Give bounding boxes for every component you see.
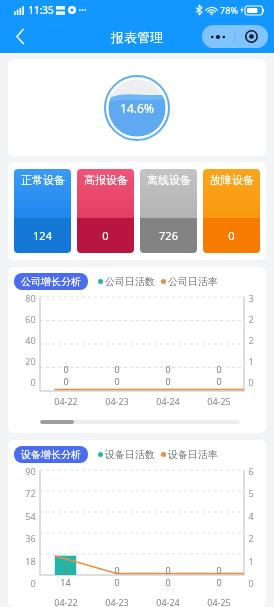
staticText: 设备增长分析 bbox=[21, 448, 81, 461]
staticText: 04-23 bbox=[105, 596, 129, 607]
staticText: 0 bbox=[165, 564, 171, 576]
staticText: 0 bbox=[30, 376, 36, 388]
staticText: 0 bbox=[102, 228, 109, 243]
staticText: 72 bbox=[25, 487, 36, 499]
staticText: 0 bbox=[30, 577, 36, 589]
staticText: 18 bbox=[25, 555, 36, 567]
button[interactable]: 公司增长分析 bbox=[8, 267, 266, 433]
staticText: 公司增长分析 bbox=[21, 275, 81, 288]
staticText: 36 bbox=[25, 532, 36, 544]
button[interactable]: Back bbox=[0, 20, 40, 53]
staticText: 0 bbox=[63, 363, 69, 375]
staticText: 正常设备 bbox=[21, 173, 65, 187]
staticText: 0 bbox=[216, 576, 222, 588]
staticText: 0 bbox=[228, 228, 235, 243]
button[interactable]: 正常设备 bbox=[14, 169, 71, 253]
staticText: 14 bbox=[60, 576, 71, 588]
staticText: 设备日活率 bbox=[168, 448, 218, 461]
staticText: 04-24 bbox=[156, 596, 180, 607]
button[interactable]: 离线设备 bbox=[140, 169, 197, 253]
staticText: 14.6% bbox=[120, 100, 154, 116]
staticText: 40 bbox=[25, 334, 36, 346]
staticText: 6 bbox=[248, 465, 254, 477]
staticText: 90 bbox=[25, 465, 36, 477]
staticText: 离线设备 bbox=[147, 173, 191, 187]
button[interactable]: 设备增长分析 bbox=[8, 440, 266, 607]
staticText: 3 bbox=[248, 292, 254, 304]
staticText: 0 bbox=[165, 363, 171, 375]
staticText: 公司日活数 bbox=[105, 275, 155, 288]
staticText: 报表管理 bbox=[111, 29, 163, 45]
staticText: 78% bbox=[220, 4, 238, 16]
staticText: 0 bbox=[216, 375, 222, 387]
staticText: 0 bbox=[216, 564, 222, 576]
button[interactable]: Mini program menu bbox=[202, 25, 268, 48]
staticText: 0 bbox=[63, 375, 69, 387]
staticText: 2 bbox=[248, 313, 254, 325]
staticText: 04-25 bbox=[207, 395, 231, 407]
staticText: 04-22 bbox=[54, 596, 78, 607]
staticText: 2 bbox=[248, 334, 254, 346]
staticText: 设备日活数 bbox=[105, 448, 155, 461]
staticText: 0 bbox=[114, 363, 120, 375]
button[interactable]: 高报设备 bbox=[77, 169, 134, 253]
staticText: 5 bbox=[248, 487, 254, 499]
staticText: 0 bbox=[114, 375, 120, 387]
staticText: 54 bbox=[25, 510, 36, 522]
staticText: 04-24 bbox=[156, 395, 180, 407]
staticText: 1 bbox=[248, 555, 254, 567]
staticText: 04-23 bbox=[105, 395, 129, 407]
staticText: 0 bbox=[114, 564, 120, 576]
staticText: 0 bbox=[114, 576, 120, 588]
staticText: 高报设备 bbox=[84, 173, 128, 187]
button[interactable]: 故障设备 bbox=[203, 169, 260, 253]
staticText: 1 bbox=[63, 564, 69, 576]
staticText: 0 bbox=[216, 363, 222, 375]
staticText: 4 bbox=[248, 510, 254, 522]
staticText: 726 bbox=[159, 228, 178, 243]
staticText: 04-25 bbox=[207, 596, 231, 607]
staticText: 2 bbox=[248, 532, 254, 544]
staticText: 公司日活率 bbox=[168, 275, 218, 288]
staticText: 0 bbox=[165, 576, 171, 588]
staticText: 0 bbox=[248, 376, 254, 388]
staticText: 11:35 bbox=[28, 3, 54, 17]
staticText: 故障设备 bbox=[210, 173, 254, 187]
staticText: 04-22 bbox=[54, 395, 78, 407]
button[interactable]: 14.6% bbox=[8, 59, 266, 156]
staticText: 1 bbox=[248, 355, 254, 367]
staticText: 20 bbox=[25, 355, 36, 367]
staticText: 0 bbox=[248, 577, 254, 589]
staticText: 124 bbox=[33, 228, 52, 243]
staticText: 80 bbox=[25, 292, 36, 304]
staticText: 0 bbox=[165, 375, 171, 387]
staticText: 60 bbox=[25, 313, 36, 325]
